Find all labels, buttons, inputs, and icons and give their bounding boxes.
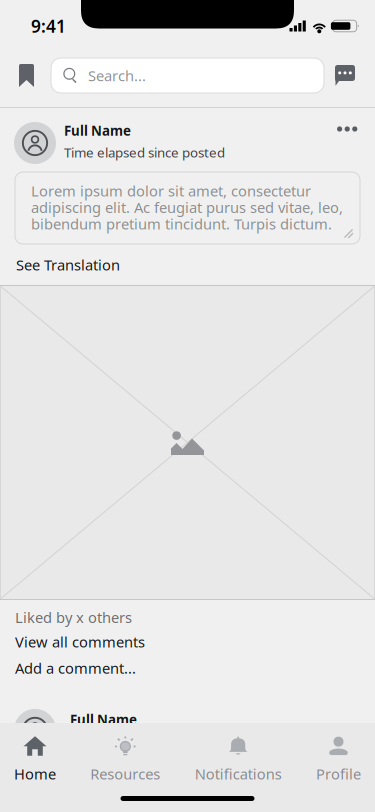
button[interactable]: More <box>330 122 364 136</box>
staticText: Home <box>14 764 56 783</box>
button[interactable]: View all comments <box>15 629 145 654</box>
staticText: Notifications <box>195 764 282 783</box>
staticText: View all comments <box>15 632 145 651</box>
staticText: Resources <box>90 764 160 783</box>
staticText: Time elapsed since posted <box>64 143 225 161</box>
button[interactable]: Notifications <box>190 723 287 784</box>
button[interactable]: Saved <box>12 52 41 99</box>
staticText: Full Name <box>70 711 137 728</box>
button[interactable]: See Translation <box>0 251 136 278</box>
button[interactable]: Add a comment... <box>15 655 136 681</box>
staticText: Profile <box>316 764 361 783</box>
button[interactable]: Profile <box>311 723 366 784</box>
button[interactable]: Home <box>9 723 61 784</box>
button[interactable]: Search... <box>51 58 324 93</box>
button[interactable]: Messages <box>331 52 359 99</box>
staticText: Search... <box>88 66 146 85</box>
staticText: Liked by x others <box>15 607 132 627</box>
staticText: Add a comment... <box>15 658 136 678</box>
staticText: Lorem ipsum dolor sit amet, consectetur … <box>31 181 343 233</box>
staticText: See Translation <box>16 255 120 274</box>
staticText: 9:41 <box>31 14 66 37</box>
button[interactable]: Resources <box>85 723 165 784</box>
staticText: Full Name <box>64 122 131 139</box>
staticText: Time elapsed since posted <box>70 731 231 749</box>
